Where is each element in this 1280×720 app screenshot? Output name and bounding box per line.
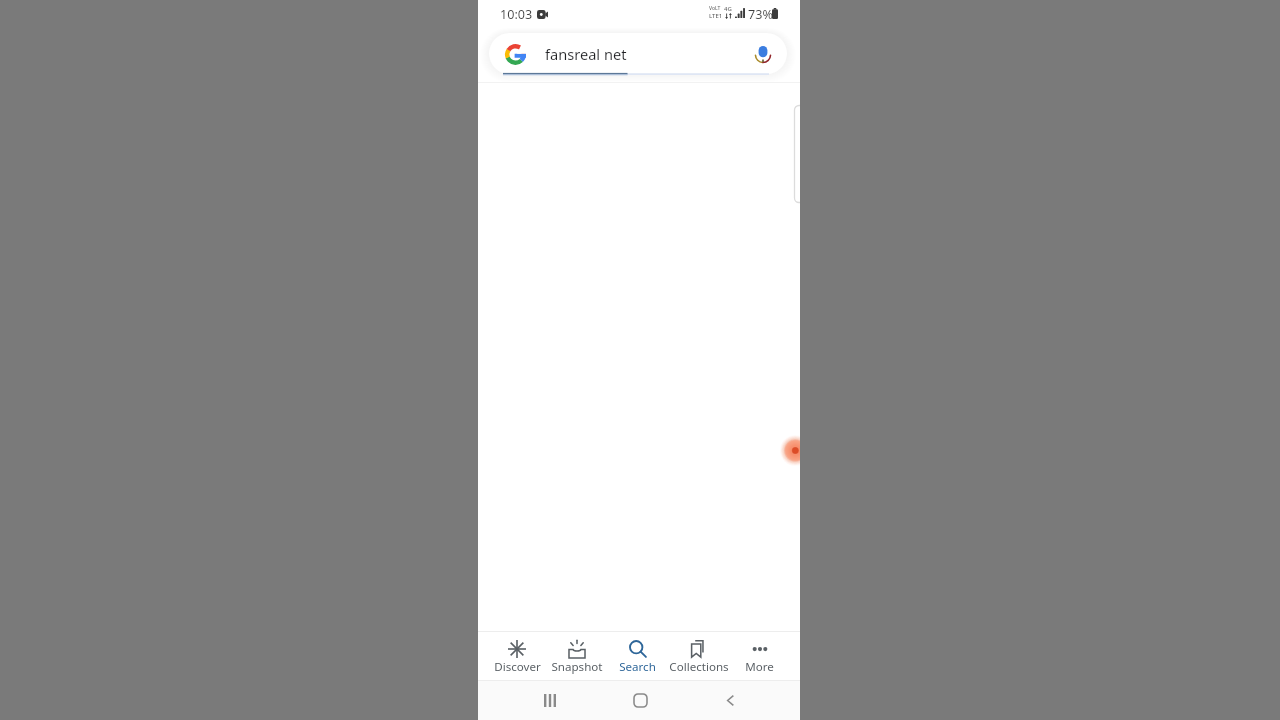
staticText: Search	[619, 659, 656, 675]
button[interactable]: More	[729, 632, 790, 680]
staticText: 10:03	[500, 6, 533, 23]
staticText: LTE1	[709, 12, 723, 20]
button[interactable]: Home	[623, 683, 657, 717]
button[interactable]: fansreal net	[489, 33, 787, 74]
button[interactable]: Collections	[668, 632, 729, 680]
button[interactable]: Recent apps	[533, 683, 567, 717]
staticText: 73%	[748, 6, 773, 23]
staticText: fansreal net	[545, 44, 627, 64]
button[interactable]: Back	[713, 683, 747, 717]
staticText: More	[745, 659, 774, 675]
button[interactable]: Search	[607, 632, 668, 680]
staticText: 4G	[724, 5, 732, 13]
staticText: Snapshot	[551, 659, 603, 675]
staticText: Discover	[494, 659, 541, 675]
button[interactable]: Snapshot	[547, 632, 607, 680]
staticText: VoLT	[709, 5, 721, 12]
staticText: Collections	[669, 659, 729, 675]
button[interactable]: Discover	[487, 632, 547, 680]
